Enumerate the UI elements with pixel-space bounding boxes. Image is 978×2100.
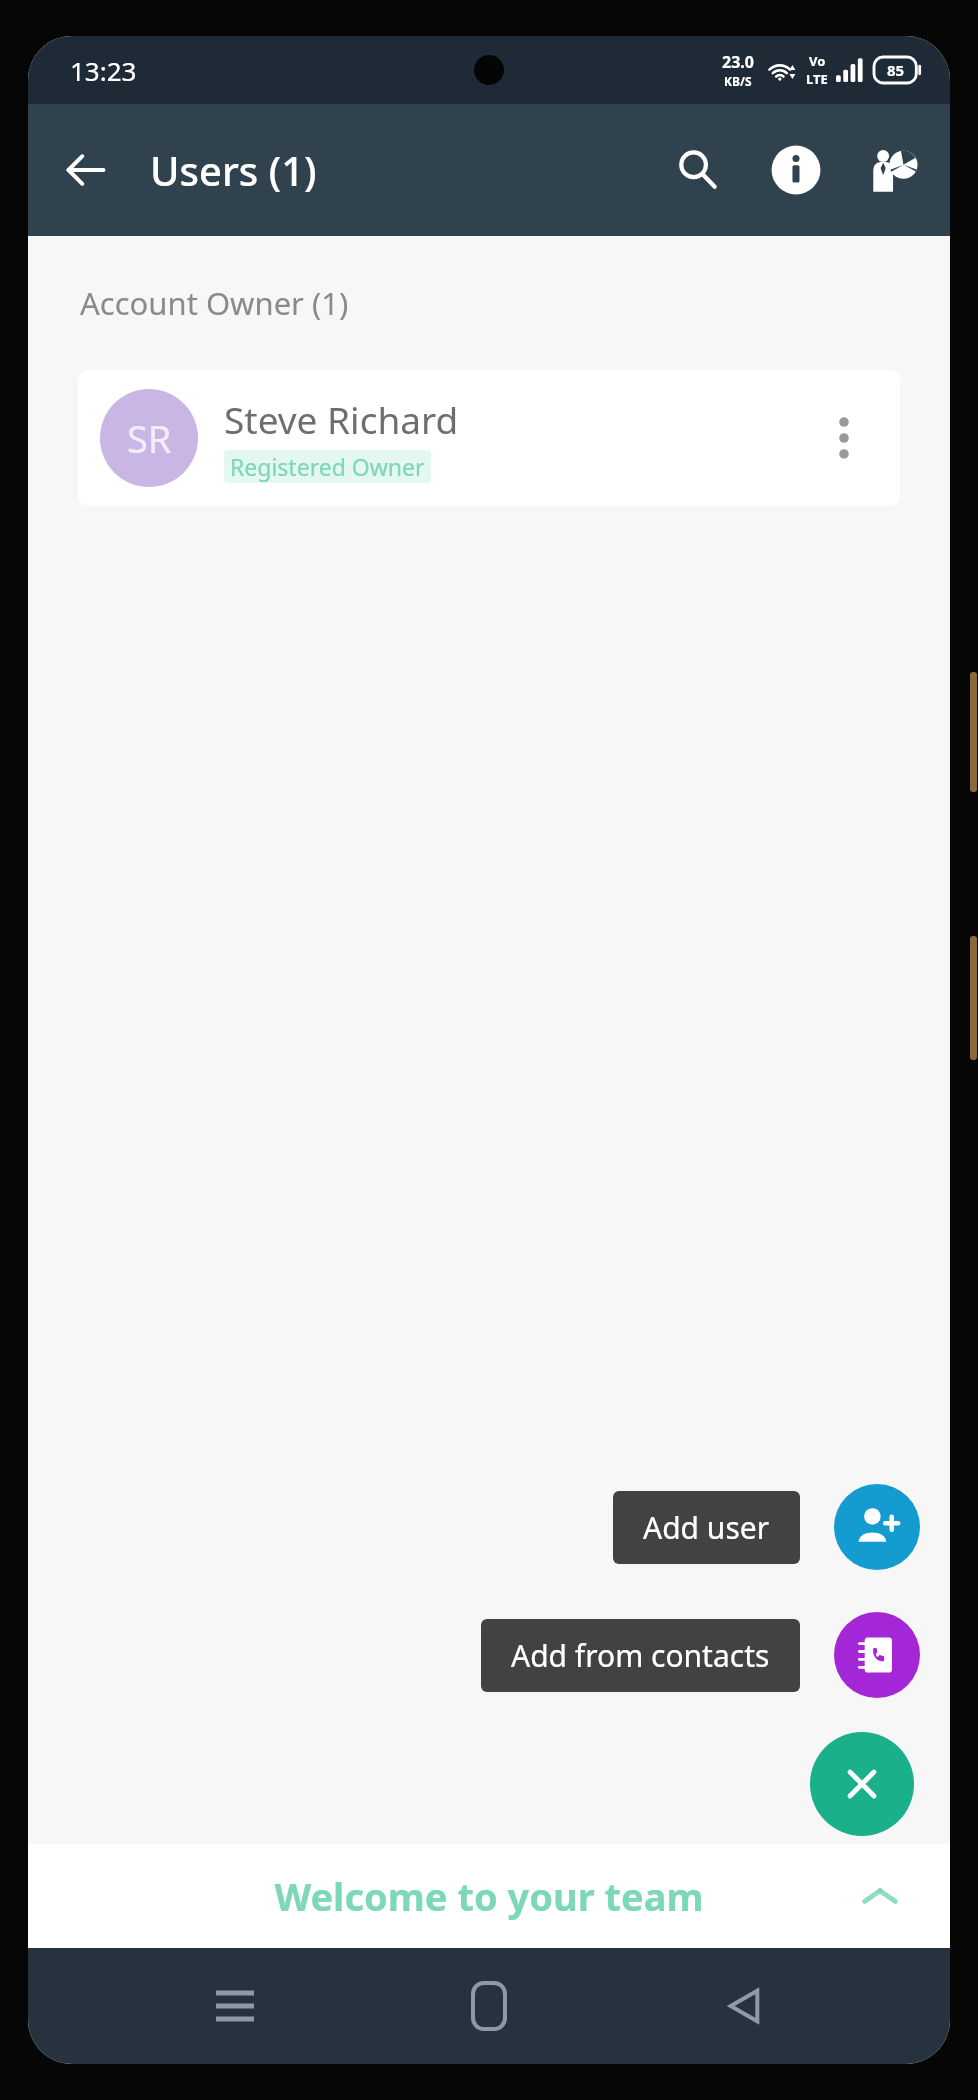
button[interactable]: Add user <box>613 1491 800 1564</box>
staticText: Vo <box>809 52 826 70</box>
staticText: Steve Richard <box>224 394 459 444</box>
button[interactable]: Reports <box>856 134 928 206</box>
staticText: 23.0 <box>722 51 754 73</box>
staticText: Welcome to your team <box>274 1870 704 1922</box>
button[interactable]: Add from contacts <box>481 1619 800 1692</box>
staticText: Add user <box>643 1507 770 1548</box>
button[interactable]: More options <box>810 404 878 472</box>
other: Expand <box>850 1866 910 1926</box>
staticText: Users (1) <box>150 143 317 197</box>
button[interactable]: Add user <box>834 1484 920 1570</box>
button[interactable]: Back <box>696 1958 792 2054</box>
button[interactable]: Close menu <box>810 1732 914 1836</box>
button[interactable]: Welcome to your team <box>28 1844 950 1948</box>
staticText: 13:23 <box>70 53 137 88</box>
button[interactable]: Add from contacts <box>834 1612 920 1698</box>
button[interactable]: SR <box>78 370 900 506</box>
staticText: LTE <box>806 70 828 88</box>
staticText: KB/S <box>724 73 752 89</box>
staticText: Registered Owner <box>230 451 425 482</box>
staticText: Account Owner (1) <box>80 282 349 324</box>
staticText: 85 <box>887 60 905 80</box>
button[interactable]: Back <box>50 134 122 206</box>
button[interactable]: Recent apps <box>187 1958 283 2054</box>
button[interactable]: Home <box>441 1958 537 2054</box>
staticText: SR <box>127 412 172 464</box>
staticText: Add from contacts <box>511 1635 770 1676</box>
button[interactable]: Search <box>662 134 734 206</box>
button[interactable]: Information <box>760 134 832 206</box>
